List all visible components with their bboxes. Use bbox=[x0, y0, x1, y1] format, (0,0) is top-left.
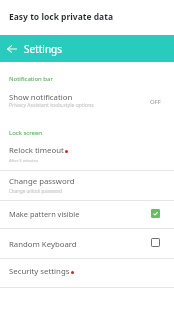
button[interactable]: Relock timeout bbox=[0, 141, 174, 171]
button[interactable]: Unchecked bbox=[151, 238, 160, 247]
button[interactable]: Make pattern visible bbox=[0, 201, 174, 228]
button[interactable]: Back bbox=[0, 37, 24, 61]
staticText: Random Keyboard bbox=[9, 239, 77, 250]
staticText: Relock timeout bbox=[9, 145, 64, 156]
staticText: Make pattern visible bbox=[9, 209, 80, 219]
staticText: Privacy Assistant tools,style options bbox=[9, 102, 174, 109]
button[interactable]: Show notification bbox=[0, 88, 174, 114]
staticText: Change unlock password bbox=[9, 188, 62, 194]
staticText: After 3 minutes bbox=[9, 158, 38, 163]
button[interactable]: Security settings bbox=[0, 259, 174, 288]
staticText: Easy to lock private data bbox=[9, 11, 113, 23]
staticText: Show notification bbox=[9, 92, 73, 103]
staticText: Lock screen bbox=[9, 129, 43, 137]
staticText: Settings bbox=[24, 42, 63, 56]
button[interactable]: Checked bbox=[151, 209, 160, 218]
staticText: Change password bbox=[9, 176, 75, 187]
staticText: Security settings bbox=[9, 266, 70, 277]
button[interactable]: Change password bbox=[0, 171, 174, 200]
staticText: Notification bar bbox=[9, 75, 53, 83]
staticText: OFF bbox=[150, 98, 161, 106]
button[interactable]: Random Keyboard bbox=[0, 229, 174, 258]
